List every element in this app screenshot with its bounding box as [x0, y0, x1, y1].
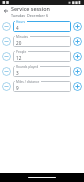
button[interactable]: Decrease Miles / distance: [2, 82, 11, 91]
button[interactable]: 4: [13, 20, 71, 32]
staticText: Miles / distance: [16, 80, 40, 84]
button[interactable]: Increase Miles / distance: [73, 82, 82, 91]
button[interactable]: 20: [13, 35, 71, 47]
button[interactable]: Increase Hours: [73, 22, 82, 31]
staticText: Tuesday, December 6: [11, 13, 49, 17]
staticText: Service session: [11, 5, 50, 12]
button[interactable]: Increase Minutes: [73, 37, 82, 46]
button[interactable]: Increase People: [73, 52, 82, 61]
button[interactable]: Decrease Hours: [2, 22, 11, 31]
button[interactable]: 9: [13, 80, 71, 92]
staticText: 9: [16, 85, 19, 91]
button[interactable]: Back: [0, 5, 11, 17]
staticText: 4: [16, 25, 19, 31]
button[interactable]: Decrease People: [2, 52, 11, 61]
staticText: 12: [16, 55, 22, 61]
staticText: Hours: [16, 20, 26, 24]
staticText: Rounds played: [16, 65, 39, 69]
staticText: 3: [16, 70, 19, 76]
staticText: People: [16, 50, 27, 54]
button[interactable]: 12: [13, 50, 71, 62]
staticText: Minutes: [16, 35, 29, 39]
button[interactable]: 3: [13, 65, 71, 77]
button[interactable]: Increase Rounds played: [73, 67, 82, 76]
button[interactable]: Decrease Minutes: [2, 37, 11, 46]
staticText: 20: [16, 40, 22, 46]
button[interactable]: Decrease Rounds played: [2, 67, 11, 76]
